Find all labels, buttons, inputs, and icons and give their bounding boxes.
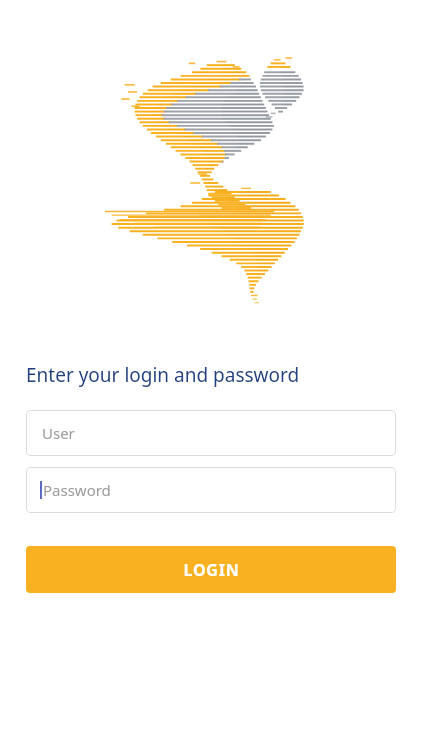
staticText: User xyxy=(42,423,75,443)
staticText: Enter your login and password xyxy=(26,362,300,388)
staticText: LOGIN xyxy=(183,559,240,581)
button[interactable]: Password xyxy=(26,467,396,513)
button[interactable]: User xyxy=(26,410,396,456)
staticText: Password xyxy=(43,480,111,500)
button[interactable]: LOGIN xyxy=(26,546,396,593)
